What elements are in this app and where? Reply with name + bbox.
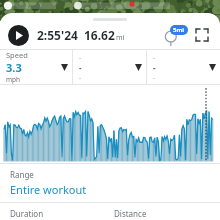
staticText: - [153, 73, 156, 82]
staticText: 2:55'24 [37, 27, 78, 43]
button[interactable]: - [147, 50, 220, 84]
staticText: 16.62 [84, 27, 115, 43]
staticText: 3.3 [6, 60, 22, 75]
staticText: Distance [114, 208, 147, 219]
staticText: - [79, 73, 82, 82]
button[interactable]: - [73, 50, 146, 84]
staticText: - [153, 62, 156, 73]
staticText: mi [116, 33, 125, 43]
staticText: Range [10, 169, 34, 180]
button[interactable]: Play [8, 25, 29, 46]
staticText: Entire workout [10, 182, 87, 197]
staticText: - [79, 62, 82, 73]
staticText: Speed [6, 50, 28, 60]
button[interactable]: Distance markers [162, 22, 188, 48]
staticText: - [79, 52, 82, 62]
staticText: 5mi [173, 26, 185, 34]
button[interactable]: Fullscreen [192, 25, 212, 45]
button[interactable]: Speed [0, 50, 72, 84]
button[interactable]: Range [0, 164, 220, 202]
staticText: Duration [10, 208, 44, 219]
staticText: mph [6, 75, 21, 84]
staticText: - [153, 52, 156, 62]
